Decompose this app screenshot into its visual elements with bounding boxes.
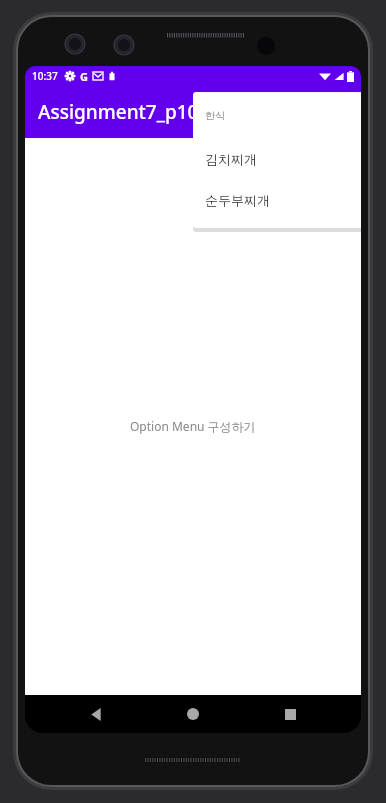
staticText: 10:37 bbox=[32, 69, 58, 83]
staticText: 김치찌개 bbox=[205, 151, 257, 167]
button[interactable]: 김치찌개 bbox=[193, 138, 361, 179]
staticText: 순두부찌개 bbox=[205, 192, 270, 208]
button[interactable]: 순두부찌개 bbox=[193, 179, 361, 220]
staticText: G bbox=[80, 69, 88, 84]
staticText: Option Menu 구성하기 bbox=[130, 418, 256, 434]
staticText: 한식 bbox=[205, 109, 225, 122]
button[interactable]: Home bbox=[176, 697, 210, 731]
button[interactable]: Back bbox=[79, 697, 113, 731]
button[interactable]: Recent apps bbox=[273, 697, 307, 731]
button[interactable]: 한식 bbox=[193, 92, 361, 138]
staticText: Assignment7_p10 bbox=[38, 99, 199, 125]
